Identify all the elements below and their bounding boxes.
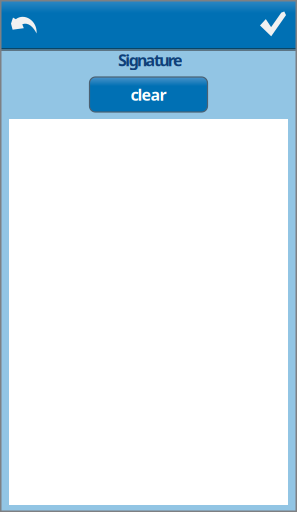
button[interactable]: Undo xyxy=(0,0,48,48)
staticText: clear xyxy=(130,84,166,105)
button[interactable]: clear xyxy=(89,77,207,112)
staticText: Signature xyxy=(118,49,183,71)
button[interactable]: Done xyxy=(249,0,297,48)
